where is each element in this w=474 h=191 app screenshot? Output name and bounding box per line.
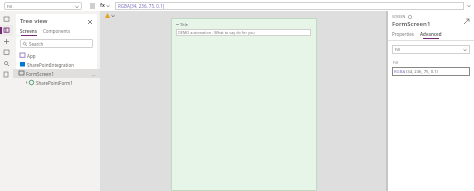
button[interactable]: Expand formula bar (88, 2, 96, 10)
staticText: ... (92, 71, 96, 77)
button[interactable]: Screens (20, 28, 37, 36)
staticText: FormScreen1 (26, 71, 54, 77)
button[interactable]: Fill (392, 45, 470, 54)
staticText: SharePointForm1 (36, 80, 73, 86)
staticText: RGBA (394, 69, 406, 75)
button[interactable]: Advanced (420, 31, 442, 39)
button[interactable]: RGBA (392, 67, 470, 76)
button[interactable]: Properties (392, 31, 414, 39)
staticText: Fill (393, 60, 398, 65)
staticText: Advanced (420, 31, 442, 37)
staticText: SCREEN (392, 14, 406, 19)
button[interactable]: Close tree view (86, 18, 93, 25)
button[interactable]: Function (100, 2, 110, 9)
button[interactable]: RGBA(34, 236, 75, 0.1) (115, 2, 464, 10)
staticText: Fill (395, 47, 401, 52)
button[interactable]: Search (20, 39, 93, 48)
staticText: FormScreen1 (392, 20, 431, 28)
staticText: Screens (20, 28, 37, 34)
staticText: fx (100, 2, 105, 9)
button[interactable]: Tree view (0, 25, 13, 36)
button[interactable]: Insert (0, 36, 13, 47)
staticText: (34, 236, 75, 0.1) (406, 69, 438, 75)
staticText: App (27, 53, 36, 59)
staticText: RGBA(34, 236, 75, 0.1) (118, 3, 165, 9)
button[interactable]: App (16, 51, 97, 60)
button[interactable]: Data (0, 47, 13, 58)
staticText: Search (29, 41, 44, 47)
button[interactable]: DEMO automation - What to say do for you (176, 29, 311, 36)
button[interactable]: Media (0, 69, 13, 80)
staticText: DEMO automation - What to say do for you (178, 30, 255, 35)
staticText: SharePointIntegration (27, 62, 74, 68)
staticText: Components (43, 28, 71, 34)
staticText: Tree view (20, 17, 48, 25)
button[interactable]: Collapse panel (462, 17, 470, 25)
button[interactable]: Components (43, 28, 71, 36)
button[interactable]: SharePointForm1 (13, 78, 100, 87)
button[interactable]: FormScreen1 (13, 69, 100, 78)
staticText: Title (180, 22, 188, 27)
button[interactable]: Search (0, 58, 13, 69)
staticText: Fill (7, 4, 13, 9)
staticText: Properties (392, 31, 414, 37)
button[interactable]: Warnings (105, 13, 115, 18)
button[interactable]: SharePointIntegration (16, 60, 97, 69)
button[interactable]: Menu (0, 14, 13, 25)
button[interactable]: Fill (4, 2, 82, 10)
